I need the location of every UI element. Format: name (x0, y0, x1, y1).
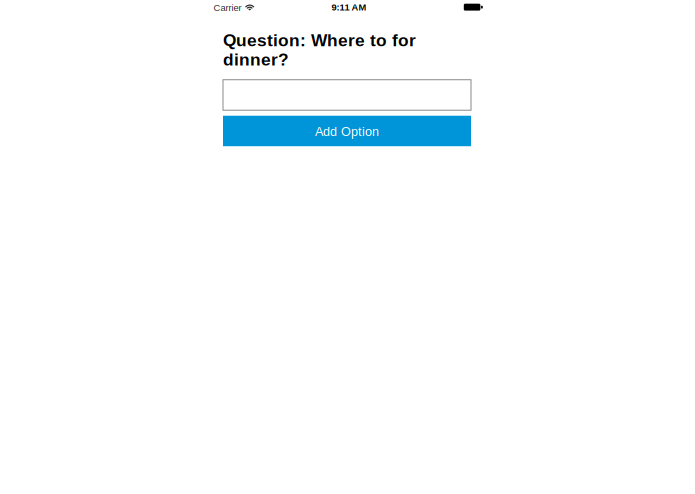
staticText: Question: Where to for dinner? (223, 30, 416, 69)
button[interactable]: Option (223, 80, 471, 110)
staticText: 9:11 AM (331, 2, 366, 12)
button[interactable]: Add Option (223, 116, 471, 146)
staticText: Carrier (213, 3, 241, 13)
staticText: Add Option (315, 125, 379, 139)
